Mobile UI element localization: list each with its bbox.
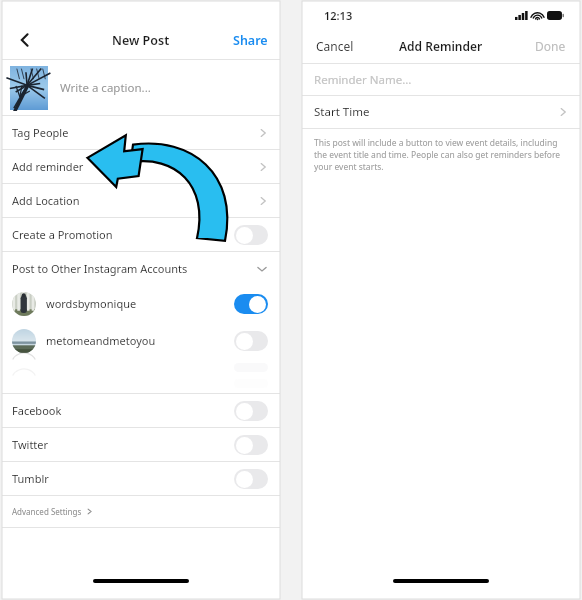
button[interactable]: Share	[221, 24, 280, 57]
staticText: wordsbymonique	[46, 296, 137, 311]
button[interactable]: Toggle on	[234, 294, 268, 314]
staticText: 12:13	[324, 8, 353, 23]
staticText: New Post	[112, 32, 170, 49]
button[interactable]: Post to Other Instagram Accounts	[2, 252, 280, 285]
button[interactable]: Advanced Settings	[2, 496, 280, 527]
staticText: Done	[535, 38, 566, 54]
staticText: Advanced Settings	[12, 506, 82, 517]
staticText: Add Location	[12, 193, 80, 208]
button[interactable]: metomeandmetoyou	[2, 322, 280, 359]
staticText: Reminder Name...	[314, 72, 412, 88]
staticText: Tag People	[12, 125, 69, 140]
button[interactable]: Toggle off	[234, 225, 268, 245]
button[interactable]: Add Location	[2, 184, 280, 217]
button[interactable]: Write a caption...	[2, 60, 280, 115]
button[interactable]: Tag People	[2, 116, 280, 149]
staticText: Add Reminder	[399, 38, 483, 54]
button[interactable]: Back	[8, 23, 42, 57]
button[interactable]: Facebook	[2, 394, 280, 427]
button[interactable]: Start Time	[302, 96, 580, 128]
staticText: Facebook	[12, 403, 62, 418]
button[interactable]: Done	[521, 30, 580, 62]
staticText: Write a caption...	[60, 80, 151, 96]
staticText: Twitter	[12, 437, 49, 452]
button[interactable]: Toggle off	[234, 435, 268, 455]
staticText: Add reminder	[12, 159, 84, 174]
button[interactable]: Add reminder	[2, 150, 280, 183]
button[interactable]: Toggle off	[234, 401, 268, 421]
staticText: Create a Promotion	[12, 227, 113, 242]
staticText: Share	[233, 32, 268, 49]
staticText: This post will include a button to view …	[314, 137, 568, 173]
staticText: Post to Other Instagram Accounts	[12, 261, 188, 276]
button[interactable]: Toggle off	[234, 331, 268, 351]
staticText: Start Time	[314, 104, 370, 120]
button[interactable]: wordsbymonique	[2, 285, 280, 322]
button[interactable]: Create a Promotion	[2, 218, 280, 251]
staticText: metomeandmetoyou	[46, 333, 156, 348]
button[interactable]: Toggle off	[234, 469, 268, 489]
button[interactable]: Cancel	[302, 30, 368, 62]
button[interactable]: Twitter	[2, 428, 280, 461]
button[interactable]: Tumblr	[2, 462, 280, 495]
staticText: Tumblr	[12, 471, 49, 486]
staticText: Cancel	[316, 38, 354, 54]
button[interactable]: Reminder Name...	[302, 64, 580, 95]
